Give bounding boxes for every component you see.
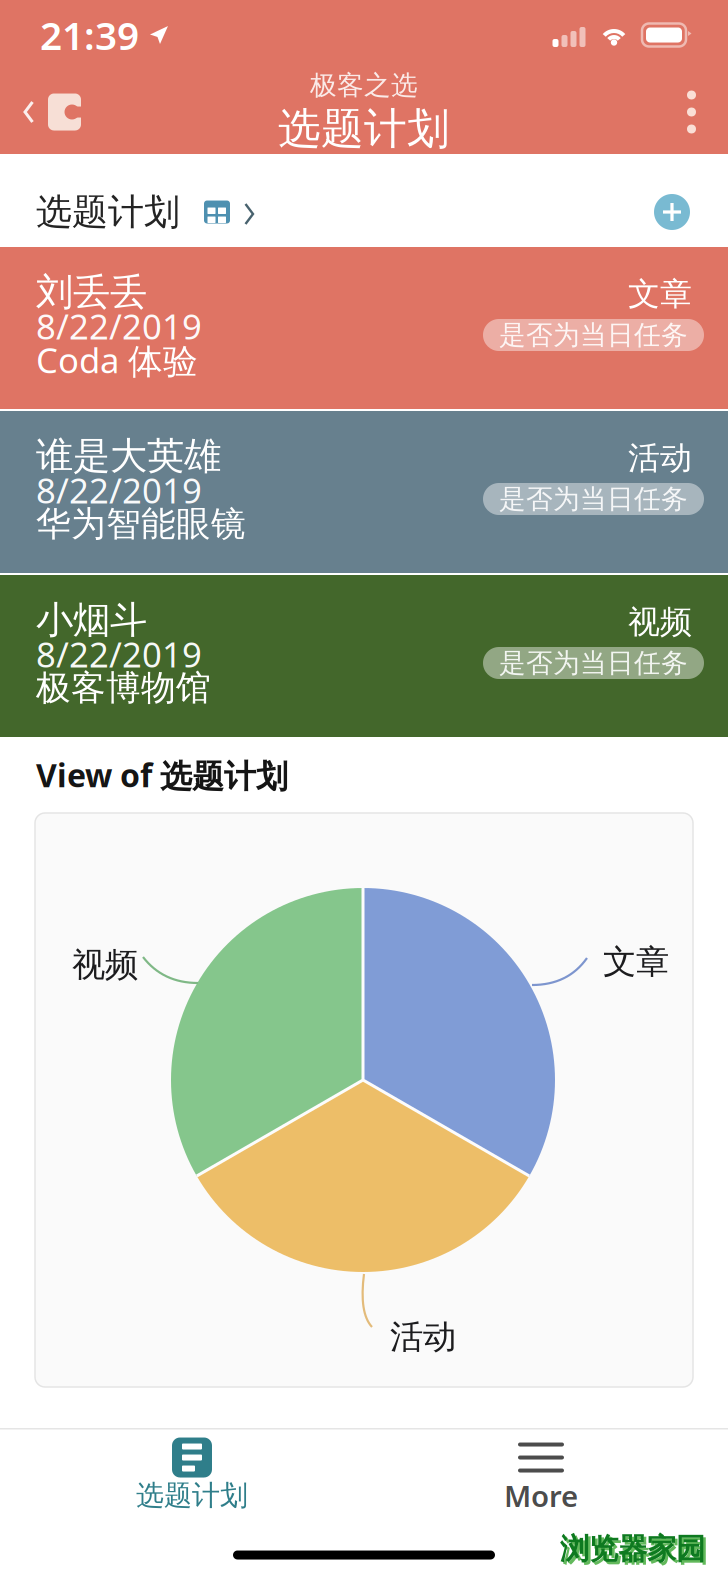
button[interactable]: Open table view bbox=[204, 190, 254, 233]
staticText: 文章 bbox=[628, 274, 692, 314]
staticText: 极客之选 bbox=[310, 69, 418, 102]
button[interactable]: 谁是大英雄 bbox=[0, 411, 728, 573]
staticText: 小烟斗 bbox=[36, 597, 147, 643]
staticText: 视频 bbox=[72, 944, 138, 985]
staticText: 谁是大英雄 bbox=[36, 433, 221, 479]
button[interactable]: More bbox=[441, 1429, 641, 1517]
staticText: 8/22/2019 bbox=[36, 631, 202, 677]
staticText: 浏览器家园 bbox=[562, 1533, 707, 1569]
staticText: More bbox=[504, 1476, 578, 1515]
staticText: 选题计划 bbox=[136, 1478, 248, 1513]
staticText: 刘丢丢 bbox=[36, 269, 147, 315]
staticText: View of 选题计划 bbox=[36, 754, 288, 796]
staticText: 8/22/2019 bbox=[36, 303, 202, 349]
button[interactable]: 选题计划 bbox=[92, 1429, 292, 1517]
staticText: 是否为当日任务 bbox=[499, 319, 688, 351]
staticText: 视频 bbox=[628, 602, 692, 642]
button[interactable]: 刘丢丢 bbox=[0, 247, 728, 409]
button[interactable]: More options bbox=[655, 70, 728, 154]
staticText: 文章 bbox=[603, 941, 669, 982]
staticText: 选题计划 bbox=[36, 190, 180, 234]
button[interactable]: Add row bbox=[644, 184, 700, 240]
staticText: 8/22/2019 bbox=[36, 467, 202, 513]
staticText: Coda 体验 bbox=[36, 337, 198, 383]
staticText: 选题计划 bbox=[278, 103, 450, 155]
staticText: 活动 bbox=[390, 1316, 456, 1357]
staticText: 极客博物馆 bbox=[36, 667, 211, 709]
staticText: 活动 bbox=[628, 438, 692, 478]
staticText: 浏览器家园 bbox=[560, 1531, 705, 1567]
staticText: 是否为当日任务 bbox=[499, 483, 688, 515]
staticText: 是否为当日任务 bbox=[499, 647, 688, 679]
staticText: 21:39 bbox=[40, 9, 139, 61]
button[interactable]: Back bbox=[0, 70, 95, 154]
button[interactable]: 小烟斗 bbox=[0, 575, 728, 737]
staticText: 华为智能眼镜 bbox=[36, 503, 246, 545]
